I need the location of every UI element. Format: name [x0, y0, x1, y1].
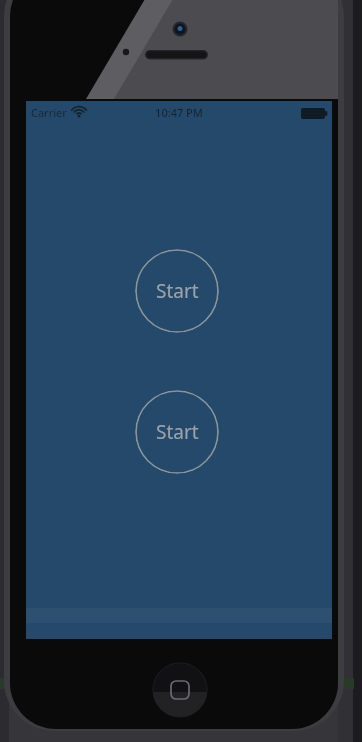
- staticText: 10:47 PM: [155, 105, 203, 120]
- button[interactable]: Start button 1: [135, 249, 219, 333]
- staticText: Carrier: [31, 105, 67, 120]
- staticText: Start: [156, 278, 199, 304]
- button[interactable]: Start button 2: [135, 390, 219, 474]
- staticText: Start: [156, 419, 199, 445]
